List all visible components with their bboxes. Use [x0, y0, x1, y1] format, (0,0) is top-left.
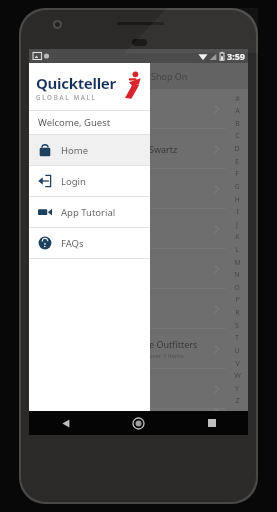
- button[interactable]: [29, 209, 226, 249]
- staticText: W: [234, 371, 241, 381]
- button[interactable]: [29, 409, 226, 411]
- staticText: Swartz: [149, 143, 178, 155]
- staticText: C: [235, 131, 240, 141]
- staticText: I: [236, 207, 239, 217]
- staticText: N: [234, 270, 240, 280]
- staticText: M: [234, 258, 241, 268]
- staticText: O: [234, 283, 240, 293]
- staticText: R: [235, 308, 240, 318]
- staticText: J: [236, 220, 238, 230]
- button[interactable]: [29, 89, 226, 129]
- staticText: B: [235, 119, 240, 129]
- staticText: Home: [61, 144, 89, 157]
- staticText: H: [234, 195, 240, 205]
- button[interactable]: [29, 169, 226, 209]
- button[interactable]: [29, 249, 226, 289]
- staticText: F: [235, 169, 239, 179]
- button[interactable]: [29, 369, 226, 409]
- staticText: FAQs: [61, 237, 84, 250]
- staticText: A: [235, 106, 240, 116]
- staticText: T: [235, 333, 239, 343]
- button[interactable]: Recent apps: [175, 411, 248, 435]
- staticText: D: [234, 144, 240, 154]
- staticText: 3:59: [227, 50, 245, 62]
- staticText: Shop On: [151, 70, 188, 82]
- staticText: V: [235, 359, 240, 369]
- button[interactable]: [29, 289, 226, 329]
- staticText: Y: [235, 384, 239, 394]
- staticText: e Outfitters: [149, 338, 198, 350]
- staticText: K: [235, 232, 240, 242]
- button[interactable]: Welcome, Guest: [29, 111, 150, 134]
- staticText: E: [235, 157, 239, 167]
- staticText: Quickteller: [36, 73, 116, 93]
- button[interactable]: FAQs: [29, 228, 150, 258]
- button[interactable]: e Outfitters: [29, 329, 226, 369]
- button[interactable]: App Tutorial: [29, 197, 150, 227]
- staticText: P: [235, 295, 240, 305]
- button[interactable]: Home: [29, 135, 150, 165]
- staticText: S: [235, 321, 239, 331]
- button[interactable]: Home: [102, 411, 175, 435]
- staticText: Login: [61, 175, 86, 188]
- button[interactable]: Swartz: [29, 129, 226, 169]
- staticText: #: [235, 94, 240, 104]
- button[interactable]: Login: [29, 166, 150, 196]
- staticText: Welcome, Guest: [38, 116, 111, 129]
- staticText: L: [235, 245, 239, 255]
- staticText: Z: [235, 396, 240, 406]
- staticText: App Tutorial: [61, 206, 116, 219]
- staticText: GLOBAL MALL: [36, 93, 97, 101]
- staticText: G: [234, 182, 240, 192]
- button[interactable]: Back: [29, 411, 102, 435]
- staticText: over 5 items: [149, 352, 184, 360]
- staticText: U: [234, 346, 240, 356]
